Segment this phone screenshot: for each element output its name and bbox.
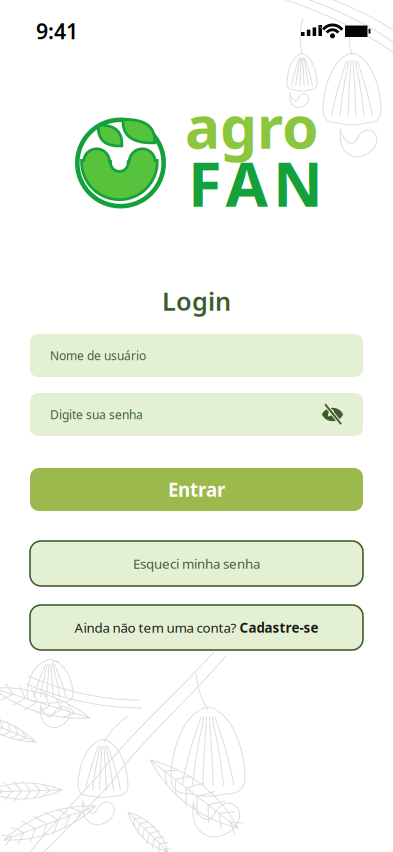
button[interactable]: Mostrar senha: [311, 393, 354, 436]
staticText: 9:41: [36, 17, 78, 45]
staticText: Esqueci minha senha: [133, 555, 260, 572]
staticText: Ainda não tem uma conta? Cadastre-se: [74, 619, 318, 636]
button[interactable]: Entrar: [30, 468, 363, 511]
staticText: Digite sua senha: [50, 406, 143, 422]
staticText: Entrar: [168, 477, 225, 502]
button[interactable]: Ainda não tem uma conta? Cadastre-se: [30, 605, 363, 650]
staticText: Login: [162, 284, 231, 318]
staticText: agro: [185, 87, 319, 165]
staticText: Nome de usuário: [50, 347, 146, 363]
button[interactable]: Esqueci minha senha: [30, 541, 363, 586]
staticText: FAN: [188, 142, 323, 224]
